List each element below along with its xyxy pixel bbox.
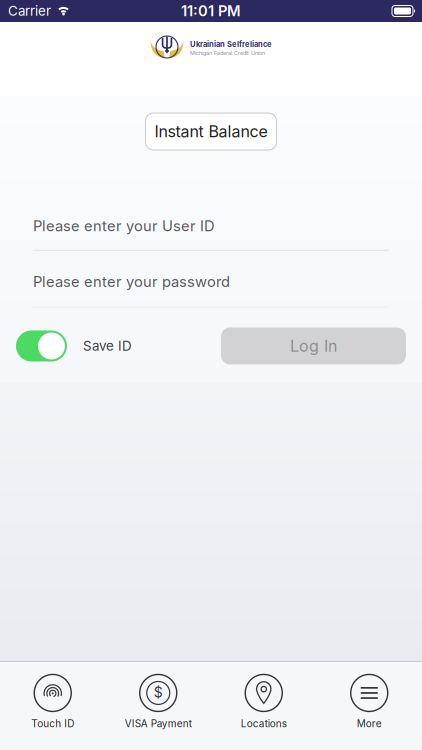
button[interactable]: Log In: [221, 327, 406, 364]
staticText: Please enter your password: [33, 273, 230, 290]
staticText: Log In: [290, 336, 337, 356]
staticText: Save ID: [83, 338, 132, 354]
staticText: Ukrainian Selfreliance: [190, 40, 272, 49]
button[interactable]: $: [105, 667, 211, 737]
staticText: Michigan Federal Credit Union: [190, 50, 265, 56]
staticText: $: [154, 684, 163, 701]
button[interactable]: Locations: [211, 667, 316, 737]
staticText: 11:01 PM: [181, 2, 241, 20]
button[interactable]: Instant Balance: [145, 113, 276, 150]
button[interactable]: Please enter your User ID: [33, 217, 389, 251]
staticText: Instant Balance: [154, 122, 267, 141]
button[interactable]: Please enter your password: [33, 273, 389, 307]
button[interactable]: Touch ID: [0, 667, 105, 737]
button[interactable]: More: [316, 667, 422, 737]
button[interactable]: Save ID: [16, 330, 67, 361]
staticText: Locations: [241, 717, 287, 730]
staticText: Touch ID: [31, 717, 74, 730]
staticText: More: [357, 717, 382, 730]
staticText: Carrier: [8, 3, 51, 19]
staticText: VISA Payment: [125, 717, 192, 730]
staticText: Please enter your User ID: [33, 217, 215, 235]
